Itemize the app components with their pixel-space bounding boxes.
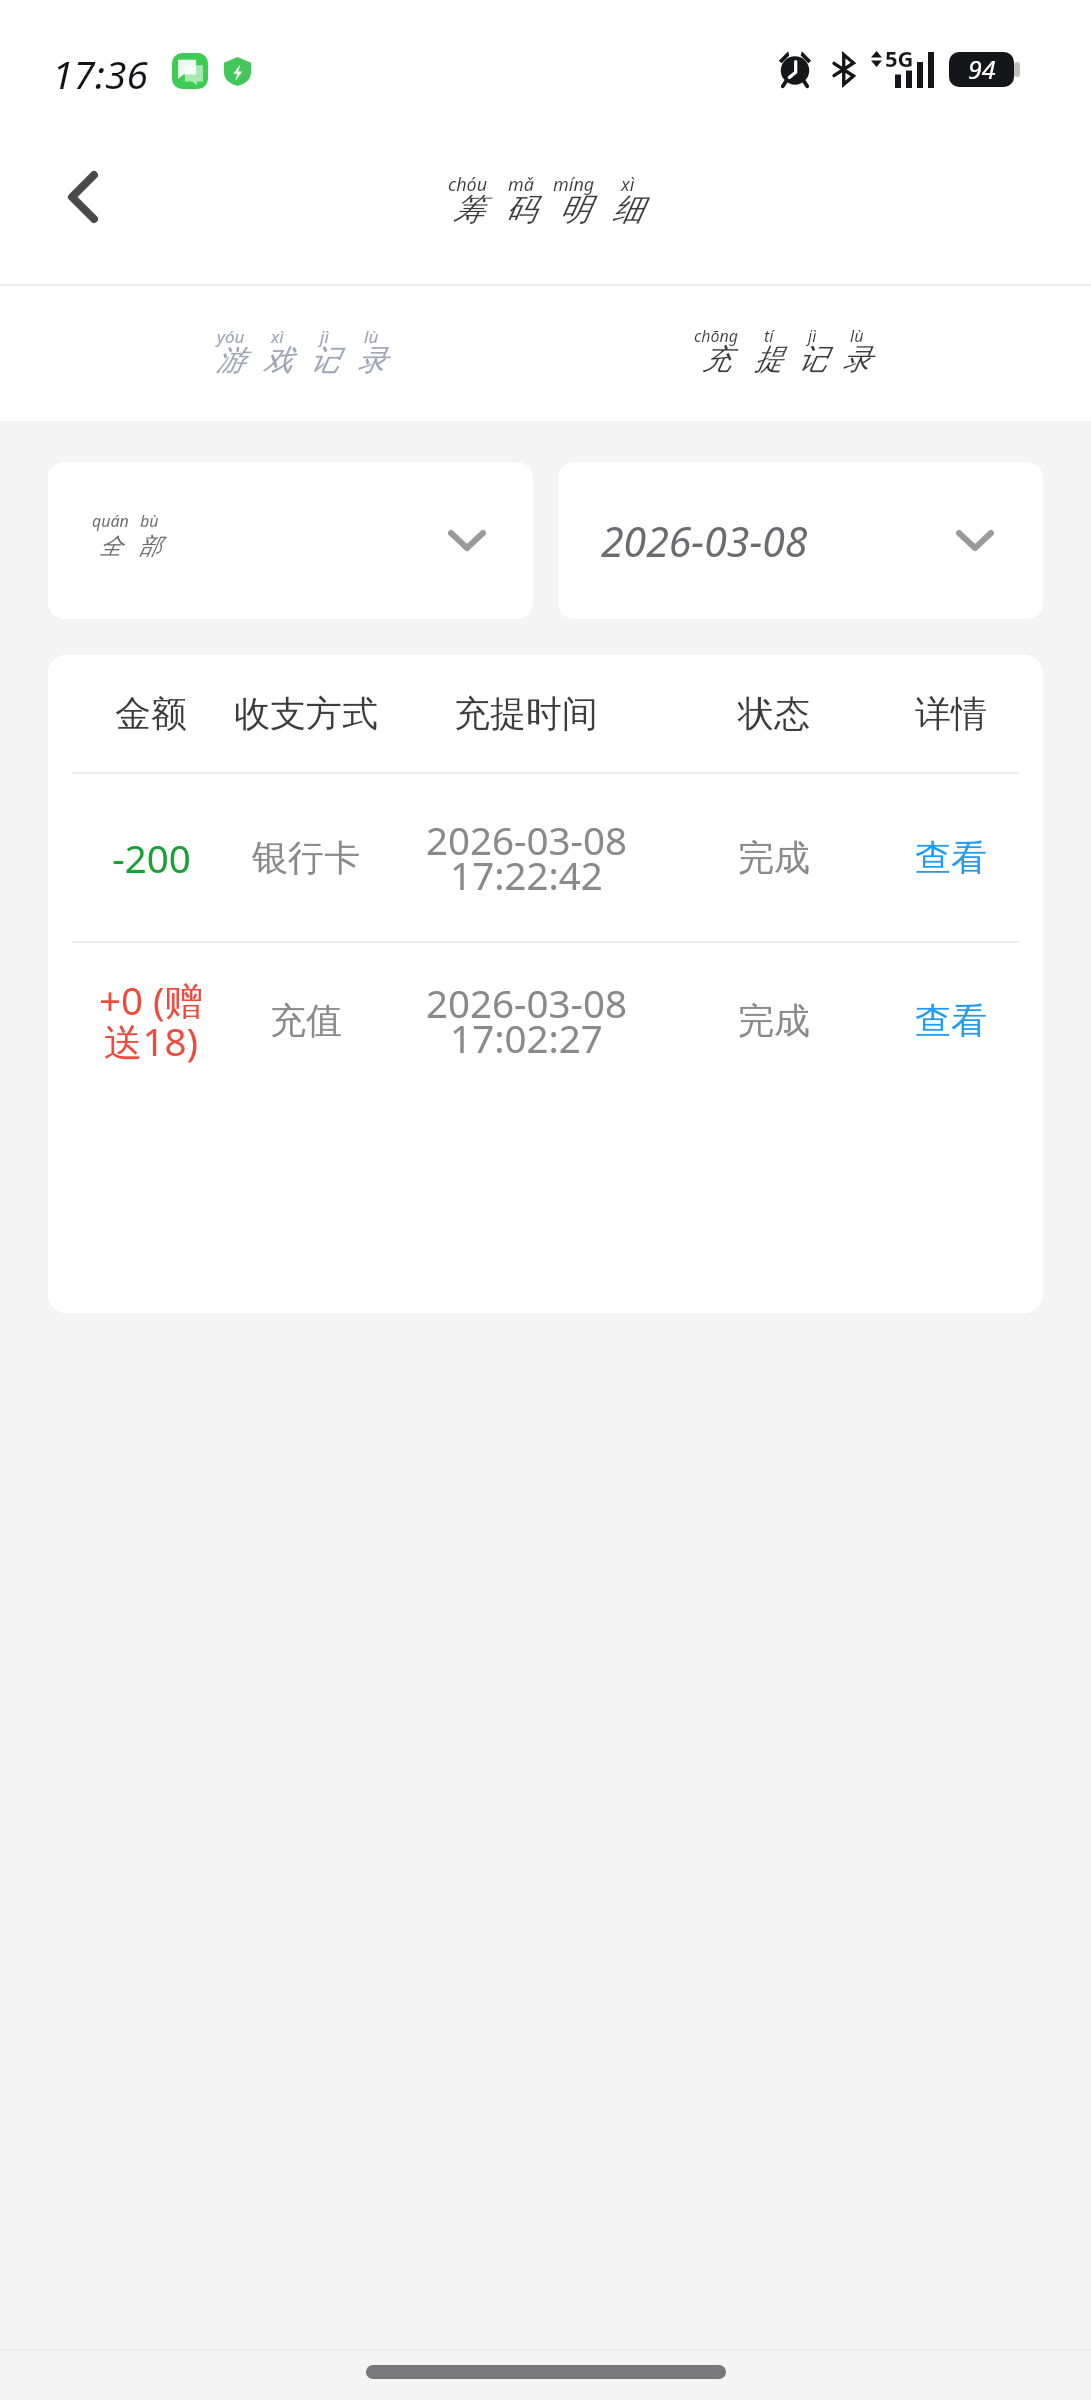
staticText: 记 — [310, 342, 339, 379]
staticText: mǎ — [508, 172, 534, 197]
staticText: 完成 — [738, 998, 810, 1043]
staticText: 银行卡 — [252, 835, 360, 880]
staticText: jì — [320, 325, 329, 348]
staticText: bù — [140, 510, 159, 532]
staticText: 2026-03-08 17:22:42 — [426, 814, 627, 902]
button[interactable]: Back — [48, 162, 118, 232]
button[interactable]: 查看 — [866, 774, 1036, 941]
staticText: 部 — [138, 532, 161, 561]
staticText: 充提时间 — [454, 691, 598, 736]
staticText: xì — [271, 325, 284, 348]
staticText: lù — [364, 325, 379, 348]
staticText: 录 — [842, 341, 871, 378]
staticText: -200 — [112, 832, 191, 884]
staticText: 收支方式 — [234, 691, 378, 736]
button[interactable]: chōng — [545, 286, 1035, 423]
staticText: 充值 — [270, 998, 342, 1043]
staticText: 详情 — [915, 691, 987, 736]
staticText: 2026-03-08 — [601, 513, 808, 569]
staticText: 充 — [702, 341, 731, 378]
staticText: 录 — [357, 342, 386, 379]
staticText: 94 — [968, 52, 996, 86]
button[interactable]: 2026-03-08 — [558, 462, 1043, 619]
staticText: +0 (赠送18) — [86, 974, 216, 1068]
staticText: yóu — [217, 325, 245, 348]
staticText: xì — [621, 172, 635, 197]
staticText: 全 — [99, 532, 122, 561]
staticText: 细 — [612, 190, 643, 229]
staticText: jì — [808, 325, 817, 347]
staticText: 5G — [885, 43, 914, 73]
staticText: 提 — [754, 341, 783, 378]
staticText: 筹 — [453, 190, 484, 229]
staticText: 状态 — [738, 691, 810, 736]
staticText: míng — [553, 172, 595, 197]
staticText: chóu — [448, 172, 488, 197]
staticText: 查看 — [915, 998, 987, 1043]
button[interactable]: yóu — [56, 286, 545, 423]
button[interactable]: quán — [48, 462, 533, 619]
staticText: 金额 — [115, 691, 187, 736]
staticText: chōng — [694, 325, 739, 347]
staticText: 查看 — [915, 835, 987, 880]
staticText: 戏 — [263, 342, 292, 379]
staticText: tí — [764, 325, 774, 347]
staticText: 游 — [216, 342, 245, 379]
staticText: 记 — [798, 341, 827, 378]
staticText: lù — [850, 325, 864, 347]
staticText: 2026-03-08 17:02:27 — [426, 977, 627, 1065]
staticText: quán — [92, 510, 129, 532]
button[interactable]: 查看 — [866, 943, 1036, 1098]
staticText: 完成 — [738, 835, 810, 880]
staticText: 明 — [559, 190, 590, 229]
staticText: 17:36 — [52, 47, 148, 100]
staticText: 码 — [505, 190, 536, 229]
